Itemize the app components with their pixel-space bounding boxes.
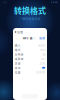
staticText: 采样率 bbox=[15, 57, 24, 61]
staticText: 9:41 bbox=[2, 0, 6, 4]
staticText: 320 bbox=[42, 52, 45, 56]
staticText: MP3 高品质 bbox=[23, 36, 37, 40]
staticText: 立体 bbox=[39, 61, 45, 65]
staticText: 文件夹 bbox=[36, 70, 45, 74]
staticText: 位置 bbox=[15, 70, 21, 74]
staticText: MP3 bbox=[40, 48, 45, 52]
staticText: 自动 bbox=[15, 66, 21, 70]
staticText: 声道 bbox=[15, 61, 21, 65]
staticText: video bbox=[38, 43, 45, 47]
staticText: 一键转换音视频 bbox=[19, 17, 40, 21]
staticText: 编辑 bbox=[39, 36, 45, 40]
staticText: 格式 bbox=[15, 48, 21, 52]
staticText: 输入 bbox=[15, 43, 21, 47]
staticText: 44.1 bbox=[41, 57, 45, 61]
staticText: 转换格式 bbox=[14, 4, 46, 16]
staticText: 比特率 bbox=[15, 52, 24, 56]
staticText: 设置 bbox=[17, 30, 23, 34]
